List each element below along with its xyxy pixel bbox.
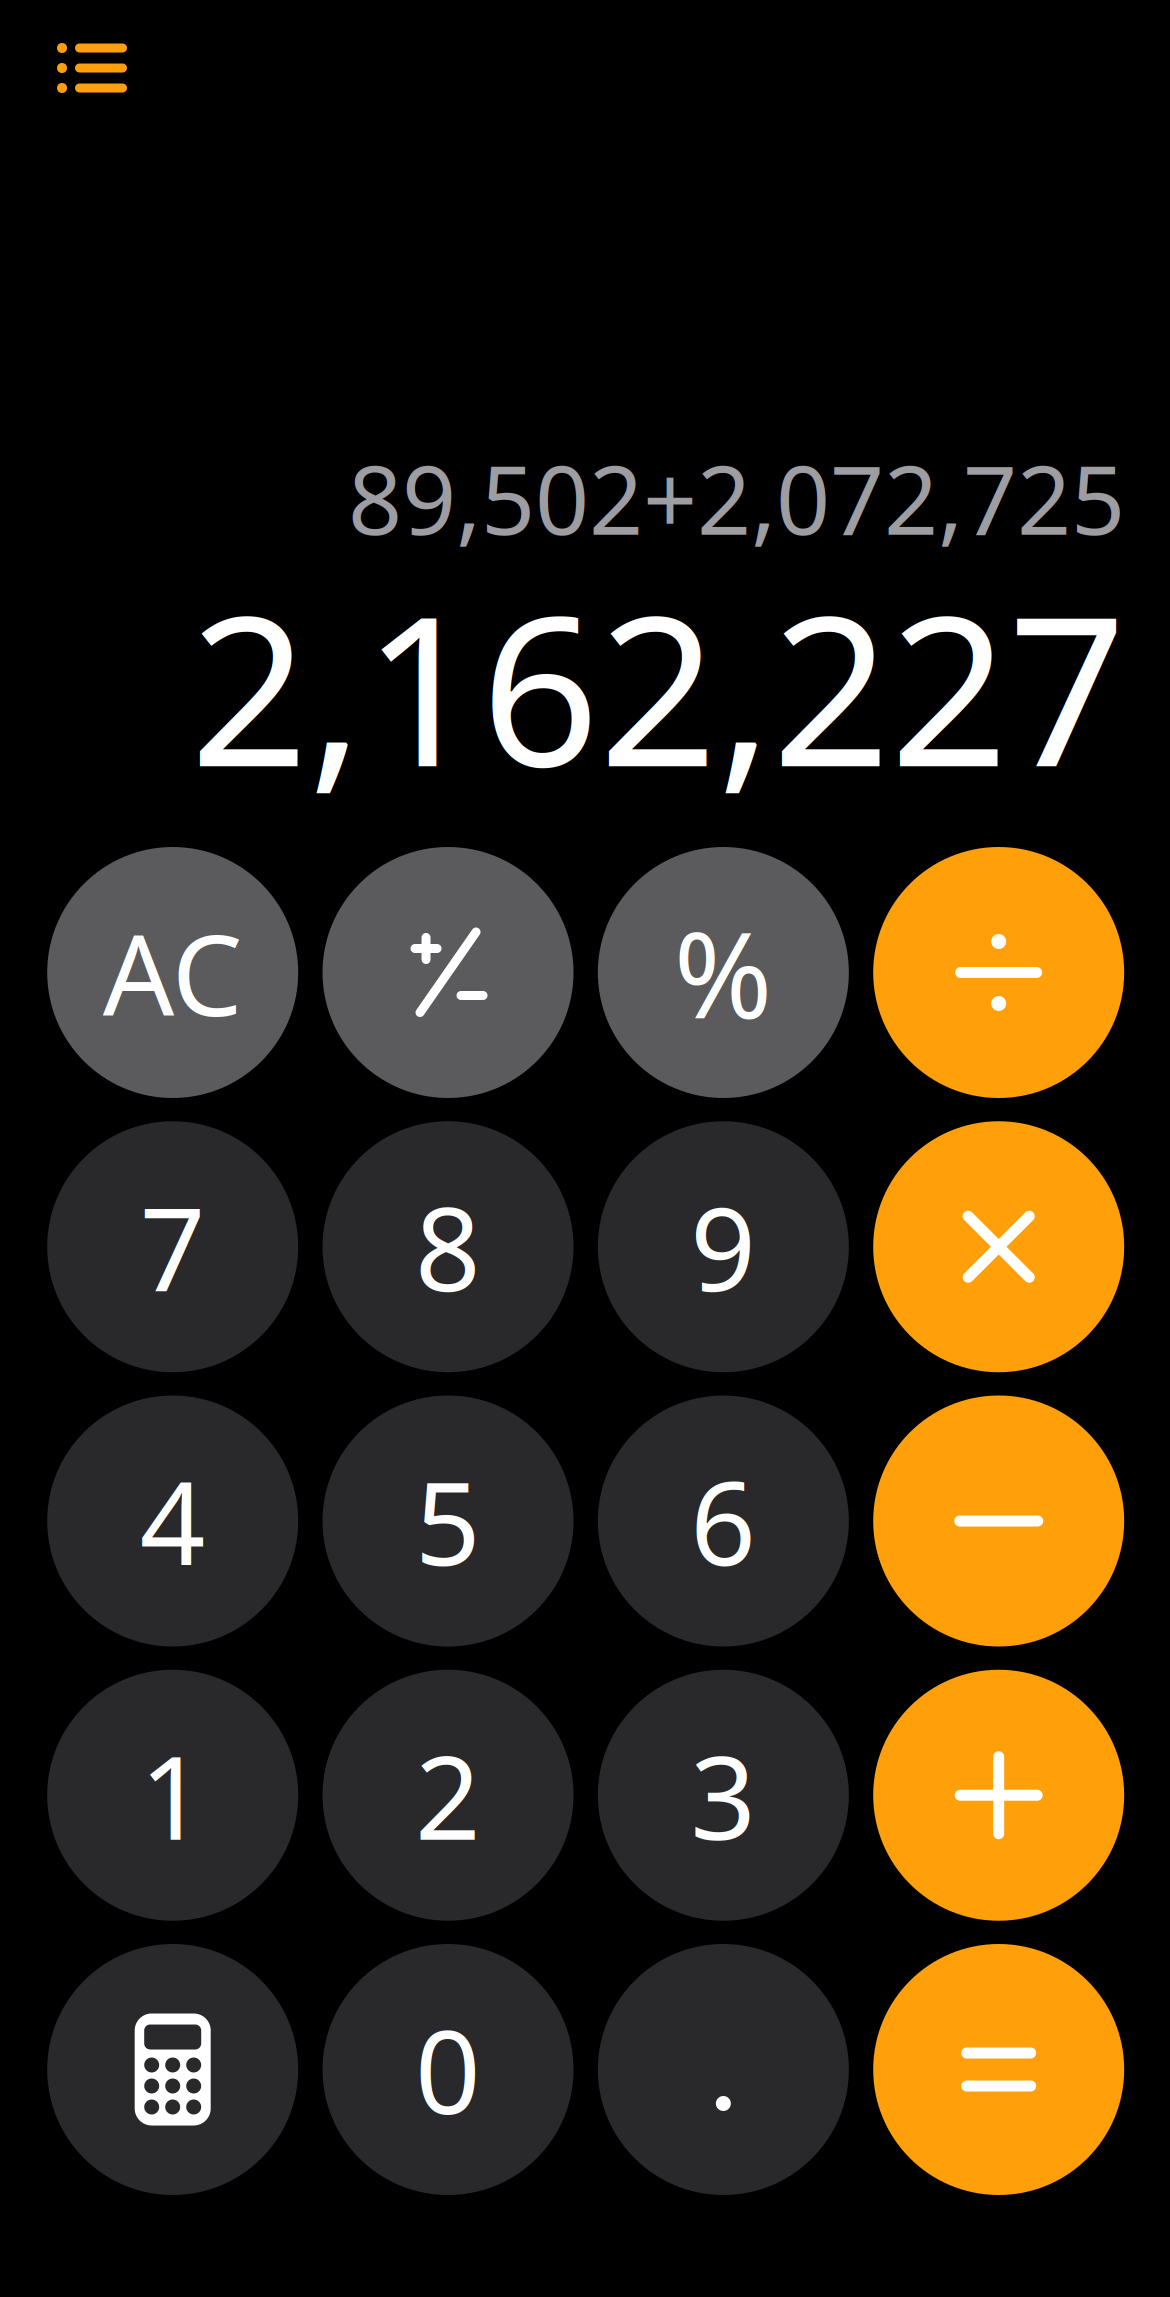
button[interactable]: 4 — [47, 1395, 298, 1646]
staticText: 0 — [415, 1993, 481, 2146]
button[interactable]: Divide — [873, 847, 1124, 1098]
button[interactable]: Equals — [873, 1944, 1124, 2195]
button[interactable]: Subtract — [873, 1395, 1124, 1646]
staticText: 3 — [690, 1719, 756, 1871]
button[interactable]: 7 — [47, 1121, 298, 1372]
button[interactable]: History — [0, 0, 161, 127]
staticText: 1 — [140, 1719, 206, 1871]
button[interactable]: 6 — [598, 1395, 849, 1646]
staticText: % — [674, 894, 773, 1051]
button[interactable]: Toggle sign — [322, 847, 573, 1098]
staticText: AC — [103, 898, 243, 1047]
button[interactable]: Multiply — [873, 1121, 1124, 1372]
button[interactable]: Calculator — [47, 1944, 298, 2195]
button[interactable]: 0 — [322, 1944, 573, 2195]
staticText: 6 — [690, 1445, 756, 1597]
button[interactable]: 2 — [322, 1670, 573, 1921]
staticText: 2,162,227 — [190, 549, 1126, 823]
button[interactable]: % — [598, 847, 849, 1098]
staticText: 89,502+2,072,725 — [348, 435, 1125, 561]
staticText: 9 — [690, 1171, 756, 1323]
button[interactable]: AC — [47, 847, 298, 1098]
button[interactable]: 9 — [598, 1121, 849, 1372]
button[interactable]: 3 — [598, 1670, 849, 1921]
button[interactable]: 1 — [47, 1670, 298, 1921]
button[interactable]: Add — [873, 1670, 1124, 1921]
staticText: 2 — [415, 1719, 481, 1871]
staticText: 4 — [140, 1445, 206, 1597]
button[interactable]: Decimal point — [598, 1944, 849, 2195]
staticText: 8 — [415, 1171, 481, 1323]
staticText: 7 — [140, 1171, 206, 1323]
button[interactable]: 8 — [322, 1121, 573, 1372]
button[interactable]: 5 — [322, 1395, 573, 1646]
staticText: 5 — [415, 1445, 481, 1597]
